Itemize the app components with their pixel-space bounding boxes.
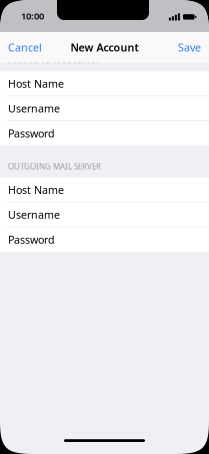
button[interactable]: Username [0,96,209,121]
staticText: INCOMING MAIL SERVER [8,55,100,65]
staticText: OUTGOING MAIL SERVER [8,161,101,172]
staticText: Username [8,208,60,222]
staticText: Password [8,126,55,140]
button[interactable]: Cancel [6,35,44,59]
button[interactable]: Save [176,35,203,59]
staticText: Host Name [8,76,64,91]
staticText: Password [8,232,55,247]
button[interactable]: Password [0,121,209,145]
staticText: 10:00 [21,10,44,22]
button[interactable]: Host Name [0,178,209,202]
staticText: New Account [70,40,138,54]
button[interactable]: Password [0,227,209,252]
staticText: Username [8,101,60,116]
button[interactable]: Host Name [0,71,209,96]
staticText: Save [178,40,201,54]
button[interactable]: Username [0,202,209,227]
staticText: Cancel [8,40,42,54]
staticText: Host Name [8,183,64,197]
